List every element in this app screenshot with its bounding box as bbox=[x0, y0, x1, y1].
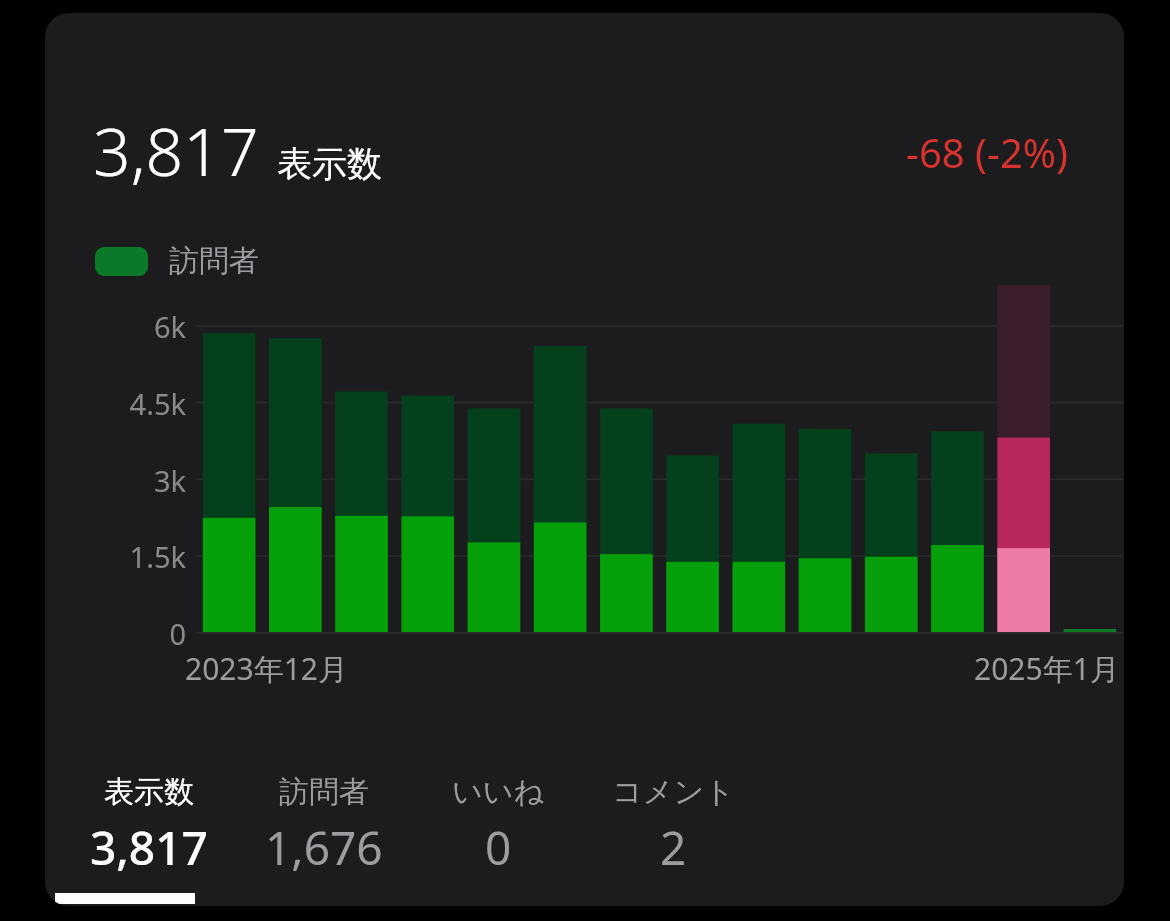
button[interactable]: コメント bbox=[586, 773, 761, 879]
staticText: 3,817 bbox=[93, 105, 259, 195]
staticText: 3,817 bbox=[90, 816, 208, 879]
staticText: 0 bbox=[485, 816, 512, 879]
staticText: 1,676 bbox=[265, 816, 383, 879]
staticText: 表示数 bbox=[277, 142, 382, 186]
staticText: 2023年12月 bbox=[185, 648, 348, 689]
button[interactable]: 3,817 bbox=[45, 13, 1124, 906]
staticText: 訪問者 bbox=[169, 242, 259, 280]
button[interactable]: 訪問者 bbox=[95, 242, 259, 280]
staticText: 1.5k bbox=[45, 537, 186, 576]
staticText: 表示数 bbox=[104, 773, 194, 811]
staticText: 2025年1月 bbox=[974, 648, 1120, 689]
button[interactable]: 表示数 bbox=[61, 773, 236, 879]
staticText: 2 bbox=[660, 816, 687, 879]
staticText: 6k bbox=[45, 307, 186, 346]
staticText: いいね bbox=[452, 773, 545, 811]
button[interactable]: 訪問者 bbox=[236, 773, 411, 879]
staticText: 4.5k bbox=[45, 384, 186, 423]
staticText: コメント bbox=[612, 773, 735, 811]
button[interactable]: いいね bbox=[411, 773, 586, 879]
staticText: 0 bbox=[45, 614, 186, 653]
staticText: 訪問者 bbox=[279, 773, 369, 811]
staticText: -68 (-2%) bbox=[906, 125, 1069, 179]
staticText: 3k bbox=[45, 461, 186, 500]
